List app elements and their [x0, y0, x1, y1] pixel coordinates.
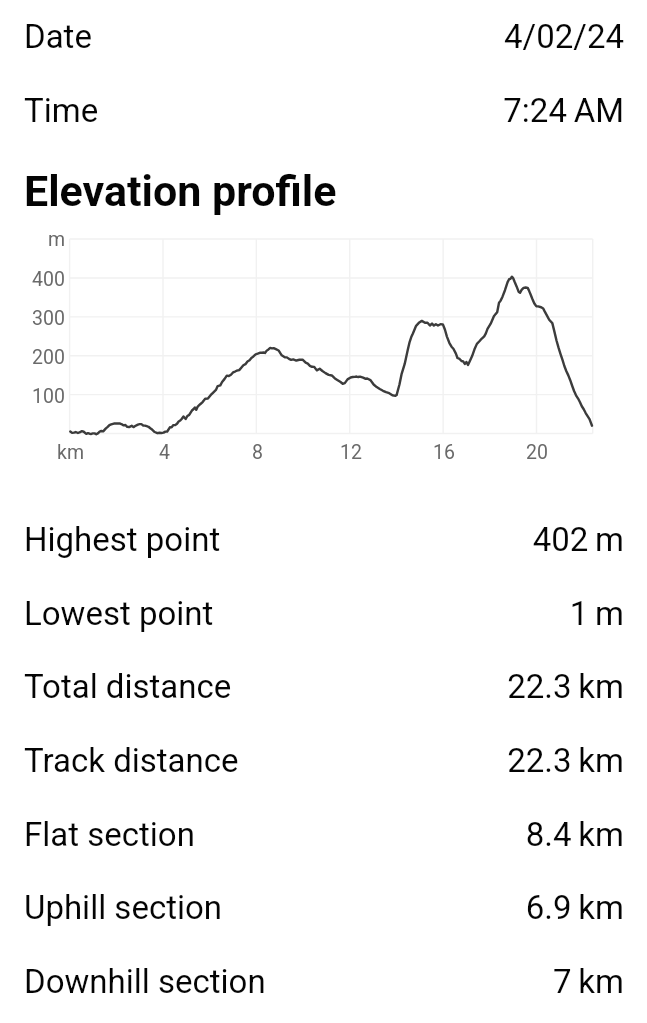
other: Elevation profile chart [0, 0, 647, 1023]
staticText: 8 [252, 441, 263, 464]
staticText: m [0, 228, 65, 251]
button[interactable]: Lowest point [0, 575, 647, 649]
staticText: km [57, 441, 84, 464]
staticText: 7:24 AM [204, 91, 624, 130]
button[interactable]: Total distance [0, 648, 647, 722]
staticText: Downhill section [24, 962, 266, 1001]
staticText: Total distance [24, 667, 232, 706]
staticText: 200 [0, 346, 65, 369]
staticText: 4/02/24 [204, 17, 624, 56]
button[interactable]: Track distance [0, 722, 647, 796]
button[interactable]: Highest point [0, 501, 647, 575]
staticText: 300 [0, 307, 65, 330]
button[interactable]: Flat section [0, 795, 647, 869]
staticText: 22.3 km [204, 741, 624, 780]
staticText: 22.3 km [204, 667, 624, 706]
staticText: Elevation profile [24, 166, 337, 216]
button[interactable]: Uphill section [0, 869, 647, 943]
staticText: Uphill section [24, 888, 223, 927]
staticText: 16 [433, 441, 455, 464]
staticText: 402 m [204, 520, 624, 559]
staticText: 6.9 km [204, 888, 624, 927]
staticText: 7 km [204, 962, 624, 1001]
button[interactable]: Time [0, 72, 647, 146]
staticText: Lowest point [24, 594, 214, 633]
staticText: 12 [340, 441, 362, 464]
staticText: 4 [159, 441, 170, 464]
staticText: Time [24, 91, 99, 130]
button[interactable]: Date [0, 0, 647, 72]
staticText: 400 [0, 268, 65, 291]
staticText: Highest point [24, 520, 221, 559]
staticText: 1 m [204, 594, 624, 633]
staticText: Track distance [24, 741, 239, 780]
staticText: Flat section [24, 815, 195, 854]
staticText: Date [24, 17, 92, 56]
staticText: 8.4 km [204, 815, 624, 854]
staticText: 100 [0, 385, 65, 408]
staticText: 20 [526, 441, 548, 464]
button[interactable]: Downhill section [0, 943, 647, 1017]
